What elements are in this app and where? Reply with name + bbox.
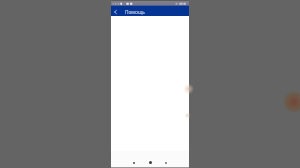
- staticText: Помощь: [125, 9, 145, 16]
- button[interactable]: Back: [129, 158, 139, 167]
- button[interactable]: Home: [145, 158, 155, 167]
- button[interactable]: Recent apps: [161, 158, 171, 167]
- button[interactable]: Back: [111, 6, 120, 16]
